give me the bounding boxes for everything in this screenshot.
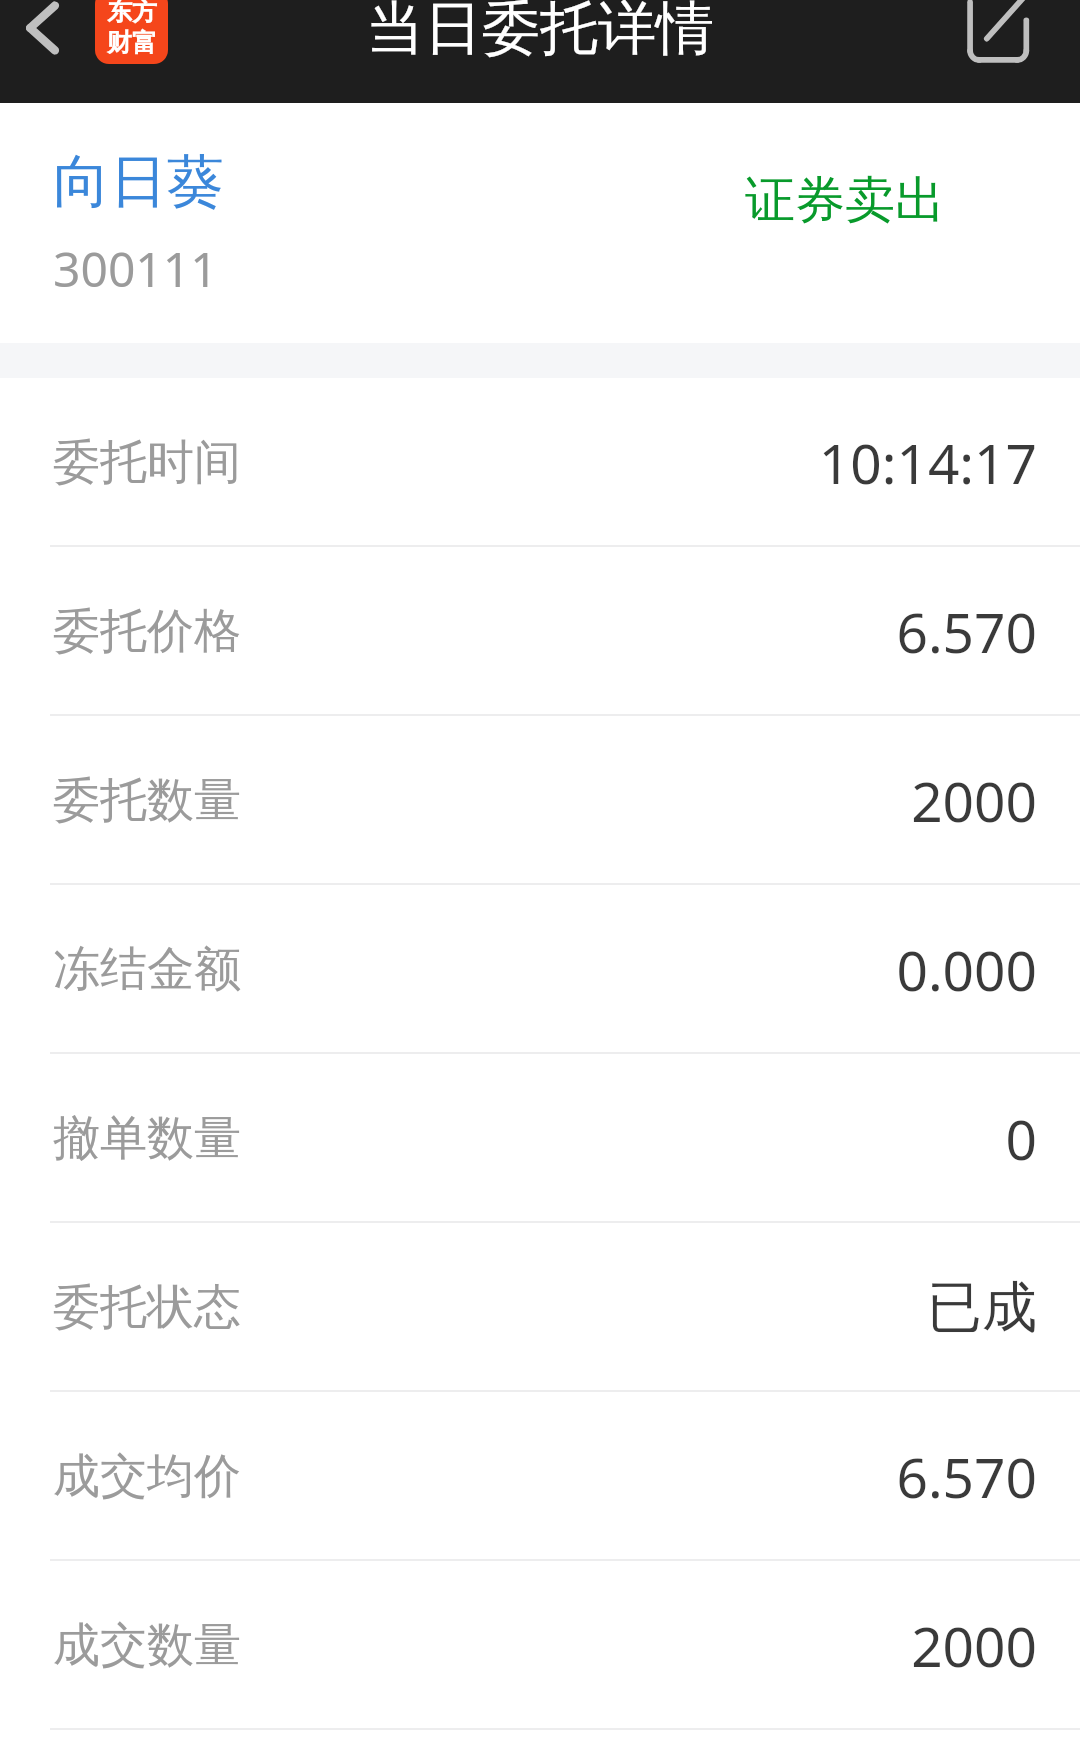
button[interactable]: 委托数量 <box>0 716 1080 885</box>
button[interactable]: East Money <box>95 0 168 64</box>
button[interactable]: 冻结金额 <box>0 885 1080 1054</box>
staticText: 当日委托详情 <box>366 0 714 65</box>
button[interactable]: 委托价格 <box>0 547 1080 716</box>
button[interactable]: 成交均价 <box>0 1392 1080 1561</box>
staticText: 300111 <box>53 236 218 301</box>
staticText: 6.570 <box>896 1439 1037 1514</box>
staticText: 已成 <box>927 1273 1037 1342</box>
button[interactable]: 撤单数量 <box>0 1054 1080 1223</box>
staticText: 委托数量 <box>53 771 241 830</box>
staticText: 2000 <box>911 763 1037 838</box>
staticText: 委托时间 <box>53 433 241 492</box>
button[interactable]: 委托状态 <box>0 1223 1080 1392</box>
staticText: 东方 <box>107 0 157 27</box>
staticText: 0.000 <box>896 932 1037 1007</box>
button[interactable]: 成交数量 <box>0 1561 1080 1730</box>
staticText: 成交均价 <box>53 1447 241 1506</box>
button[interactable]: Back <box>14 0 76 61</box>
staticText: 6.570 <box>896 594 1037 669</box>
staticText: 0 <box>1005 1101 1037 1176</box>
staticText: 2000 <box>911 1608 1037 1683</box>
staticText: 撤单数量 <box>53 1109 241 1168</box>
button[interactable]: Share <box>964 0 1040 66</box>
staticText: 向日葵 <box>53 146 224 218</box>
staticText: 财富 <box>107 27 157 58</box>
button[interactable]: 委托时间 <box>0 378 1080 547</box>
staticText: 成交数量 <box>53 1616 241 1675</box>
staticText: 委托价格 <box>53 602 241 661</box>
staticText: 10:14:17 <box>818 425 1037 500</box>
staticText: 冻结金额 <box>53 940 241 999</box>
button[interactable]: 向日葵 <box>0 103 1080 343</box>
staticText: 委托状态 <box>53 1278 241 1337</box>
staticText: 证券卖出 <box>745 169 945 232</box>
